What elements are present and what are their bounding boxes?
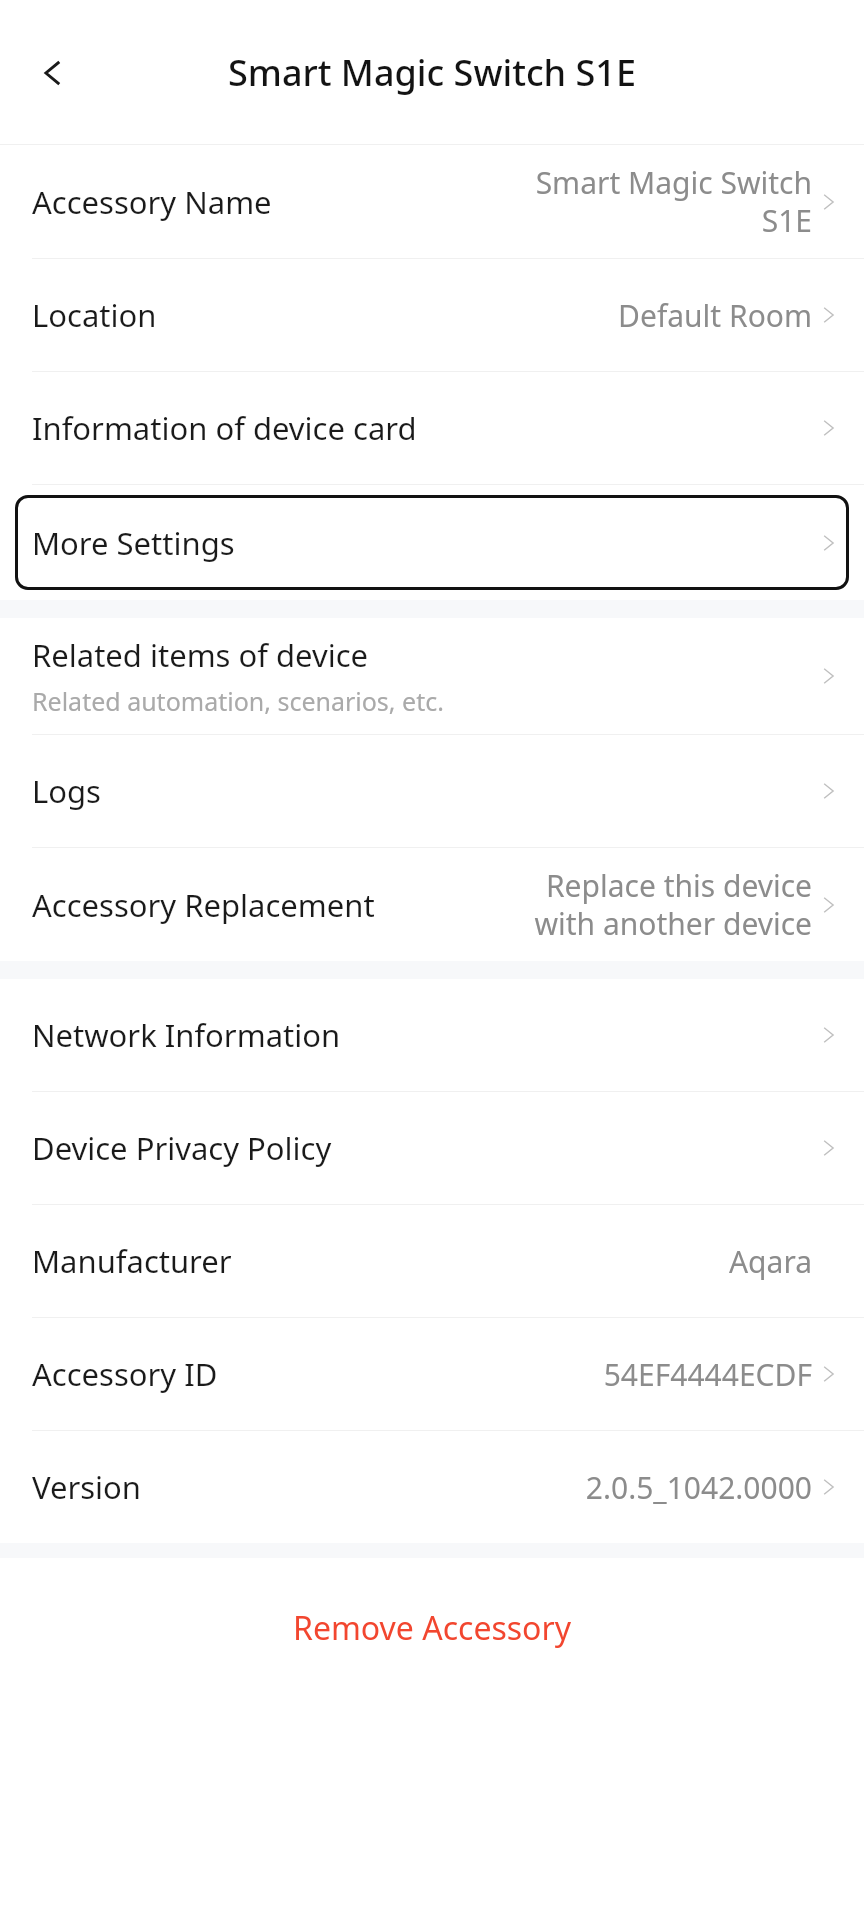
button[interactable]: More Settings: [15, 495, 849, 590]
button[interactable]: Related items of device: [0, 618, 864, 734]
staticText: Manufacturer: [32, 1240, 232, 1282]
staticText: Location: [32, 294, 157, 336]
button[interactable]: Location: [0, 259, 864, 371]
staticText: Accessory Name: [32, 181, 272, 223]
staticText: Version: [32, 1466, 142, 1508]
staticText: More Settings: [32, 522, 818, 564]
staticText: 54EF4444ECDF: [603, 1354, 812, 1395]
staticText: 2.0.5_1042.0000: [585, 1467, 812, 1508]
staticText: Network Information: [32, 1014, 341, 1056]
button[interactable]: Back: [18, 41, 82, 105]
staticText: Smart Magic Switch S1E: [228, 48, 636, 97]
staticText: Device Privacy Policy: [32, 1127, 332, 1169]
staticText: Information of device card: [32, 407, 417, 449]
staticText: Accessory Replacement: [32, 884, 375, 926]
staticText: Related automation, scenarios, etc.: [32, 684, 444, 718]
staticText: Replace this device with another device: [512, 865, 812, 944]
staticText: Default Room: [618, 295, 812, 336]
staticText: Smart Magic Switch S1E: [512, 162, 812, 241]
button[interactable]: Accessory ID: [0, 1318, 864, 1430]
button[interactable]: Information of device card: [0, 372, 864, 484]
button[interactable]: Network Information: [0, 979, 864, 1091]
button[interactable]: Remove Accessory: [0, 1558, 864, 1678]
staticText: Aqara: [728, 1241, 812, 1282]
button[interactable]: Manufacturer: [0, 1205, 864, 1317]
staticText: Logs: [32, 770, 101, 812]
staticText: Accessory ID: [32, 1353, 218, 1395]
button[interactable]: Version: [0, 1431, 864, 1543]
staticText: Related items of device: [32, 634, 369, 676]
staticText: Remove Accessory: [293, 1606, 571, 1650]
button[interactable]: Accessory Name: [0, 145, 864, 258]
button[interactable]: Device Privacy Policy: [0, 1092, 864, 1204]
button[interactable]: Accessory Replacement: [0, 848, 864, 961]
button[interactable]: Logs: [0, 735, 864, 847]
